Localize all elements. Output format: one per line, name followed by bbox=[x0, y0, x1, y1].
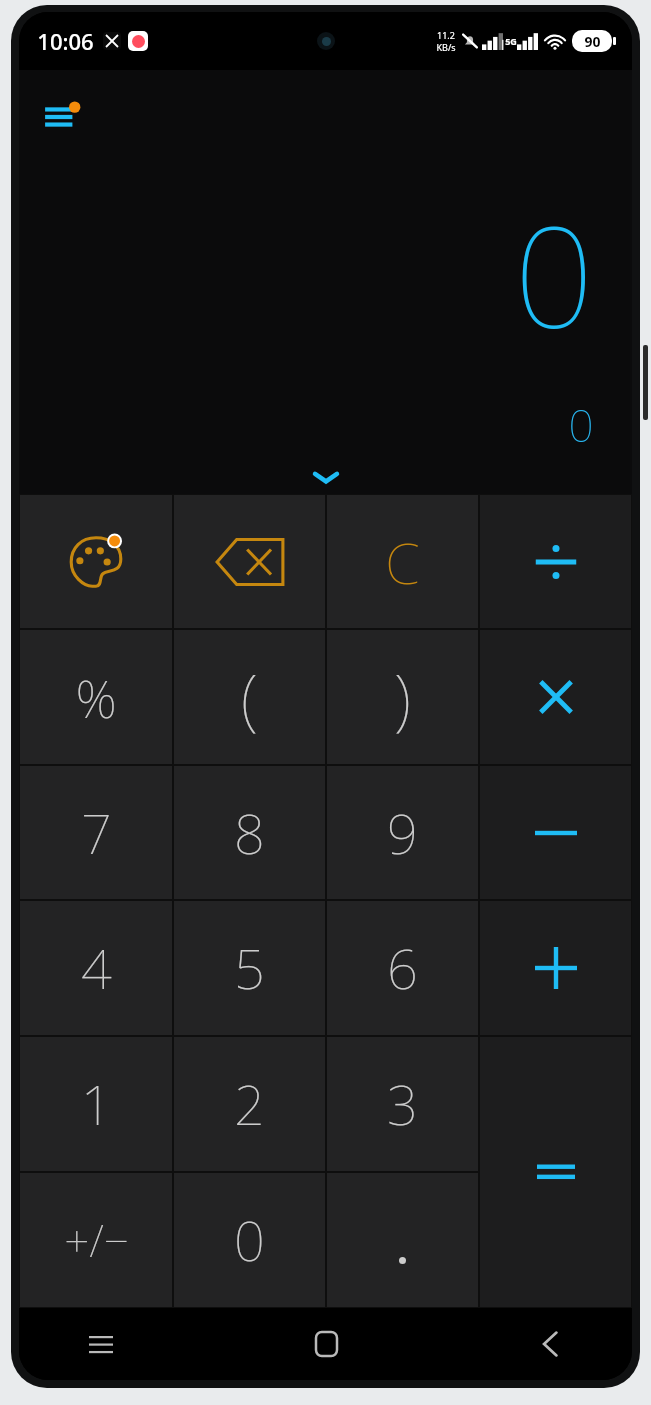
button[interactable]: 5 bbox=[174, 901, 325, 1035]
staticText: KB/s bbox=[436, 41, 456, 53]
button[interactable]: Menu bbox=[39, 92, 89, 142]
button[interactable]: 7 bbox=[20, 766, 172, 899]
staticText: 10:06 bbox=[37, 26, 94, 56]
staticText: 5 bbox=[234, 931, 265, 1005]
staticText: 4 bbox=[81, 931, 112, 1005]
staticText: 0 bbox=[568, 395, 594, 455]
button[interactable]: Theme bbox=[20, 495, 172, 628]
button[interactable]: Plus minus bbox=[20, 1173, 172, 1307]
staticText: 7 bbox=[81, 796, 112, 870]
staticText: 0 bbox=[234, 1203, 265, 1277]
button[interactable]: 0 bbox=[174, 1173, 325, 1307]
button[interactable]: Clear bbox=[327, 495, 478, 628]
button[interactable]: Show history bbox=[303, 465, 349, 489]
button[interactable]: Backspace bbox=[174, 495, 325, 628]
button[interactable]: Decimal point bbox=[327, 1173, 478, 1307]
button[interactable]: Close parenthesis bbox=[327, 630, 478, 764]
button[interactable]: 2 bbox=[174, 1037, 325, 1171]
button[interactable]: Back bbox=[526, 1320, 574, 1368]
staticText: % bbox=[75, 662, 117, 733]
button[interactable]: Home bbox=[302, 1320, 350, 1368]
button[interactable]: 8 bbox=[174, 766, 325, 899]
staticText: 8 bbox=[234, 796, 265, 870]
button[interactable]: 1 bbox=[20, 1037, 172, 1171]
staticText: ( bbox=[241, 652, 258, 742]
staticText: 90 bbox=[584, 32, 601, 51]
button[interactable]: Minus bbox=[480, 766, 631, 899]
staticText: 11.2 bbox=[437, 29, 455, 41]
staticText: C bbox=[385, 524, 420, 600]
button[interactable]: 3 bbox=[327, 1037, 478, 1171]
button[interactable]: Recent apps bbox=[77, 1320, 125, 1368]
staticText: +/− bbox=[64, 1210, 129, 1270]
staticText: 0 bbox=[514, 178, 594, 369]
button[interactable]: 9 bbox=[327, 766, 478, 899]
staticText: 1 bbox=[81, 1067, 112, 1141]
staticText: 5G bbox=[505, 35, 517, 47]
staticText: 2 bbox=[234, 1067, 265, 1141]
button[interactable]: 4 bbox=[20, 901, 172, 1035]
staticText: 9 bbox=[387, 796, 418, 870]
button[interactable]: Open parenthesis bbox=[174, 630, 325, 764]
staticText: 6 bbox=[387, 931, 418, 1005]
staticText: 3 bbox=[387, 1067, 418, 1141]
staticText: ) bbox=[394, 652, 411, 742]
button[interactable]: Percent bbox=[20, 630, 172, 764]
button[interactable]: Multiply bbox=[480, 630, 631, 764]
button[interactable]: Plus bbox=[480, 901, 631, 1035]
button[interactable]: Equals bbox=[480, 1037, 631, 1307]
button[interactable]: Divide bbox=[480, 495, 631, 628]
button[interactable]: 6 bbox=[327, 901, 478, 1035]
